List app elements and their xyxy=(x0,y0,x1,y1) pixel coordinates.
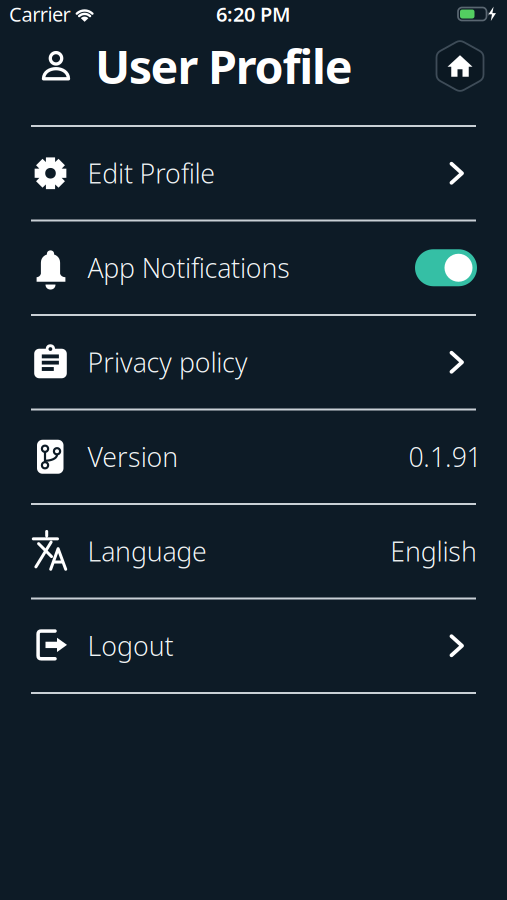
button[interactable]: Language xyxy=(0,505,507,597)
staticText: 0.1.91 xyxy=(408,439,481,474)
staticText: 6:20 PM xyxy=(216,1,291,27)
staticText: App Notifications xyxy=(87,250,290,285)
button[interactable]: App Notifications xyxy=(415,249,477,286)
button[interactable]: Logout xyxy=(0,599,507,692)
staticText: Logout xyxy=(87,628,173,663)
staticText: Edit Profile xyxy=(87,155,215,191)
staticText: Carrier xyxy=(9,1,71,27)
button[interactable]: Edit Profile xyxy=(0,127,507,219)
staticText: Privacy policy xyxy=(87,344,248,380)
staticText: User Profile xyxy=(95,35,353,97)
staticText: Version xyxy=(87,439,178,474)
staticText: Language xyxy=(87,533,207,569)
button[interactable]: Privacy policy xyxy=(0,316,507,408)
staticText: English xyxy=(390,533,477,569)
button[interactable]: Home xyxy=(434,38,486,94)
